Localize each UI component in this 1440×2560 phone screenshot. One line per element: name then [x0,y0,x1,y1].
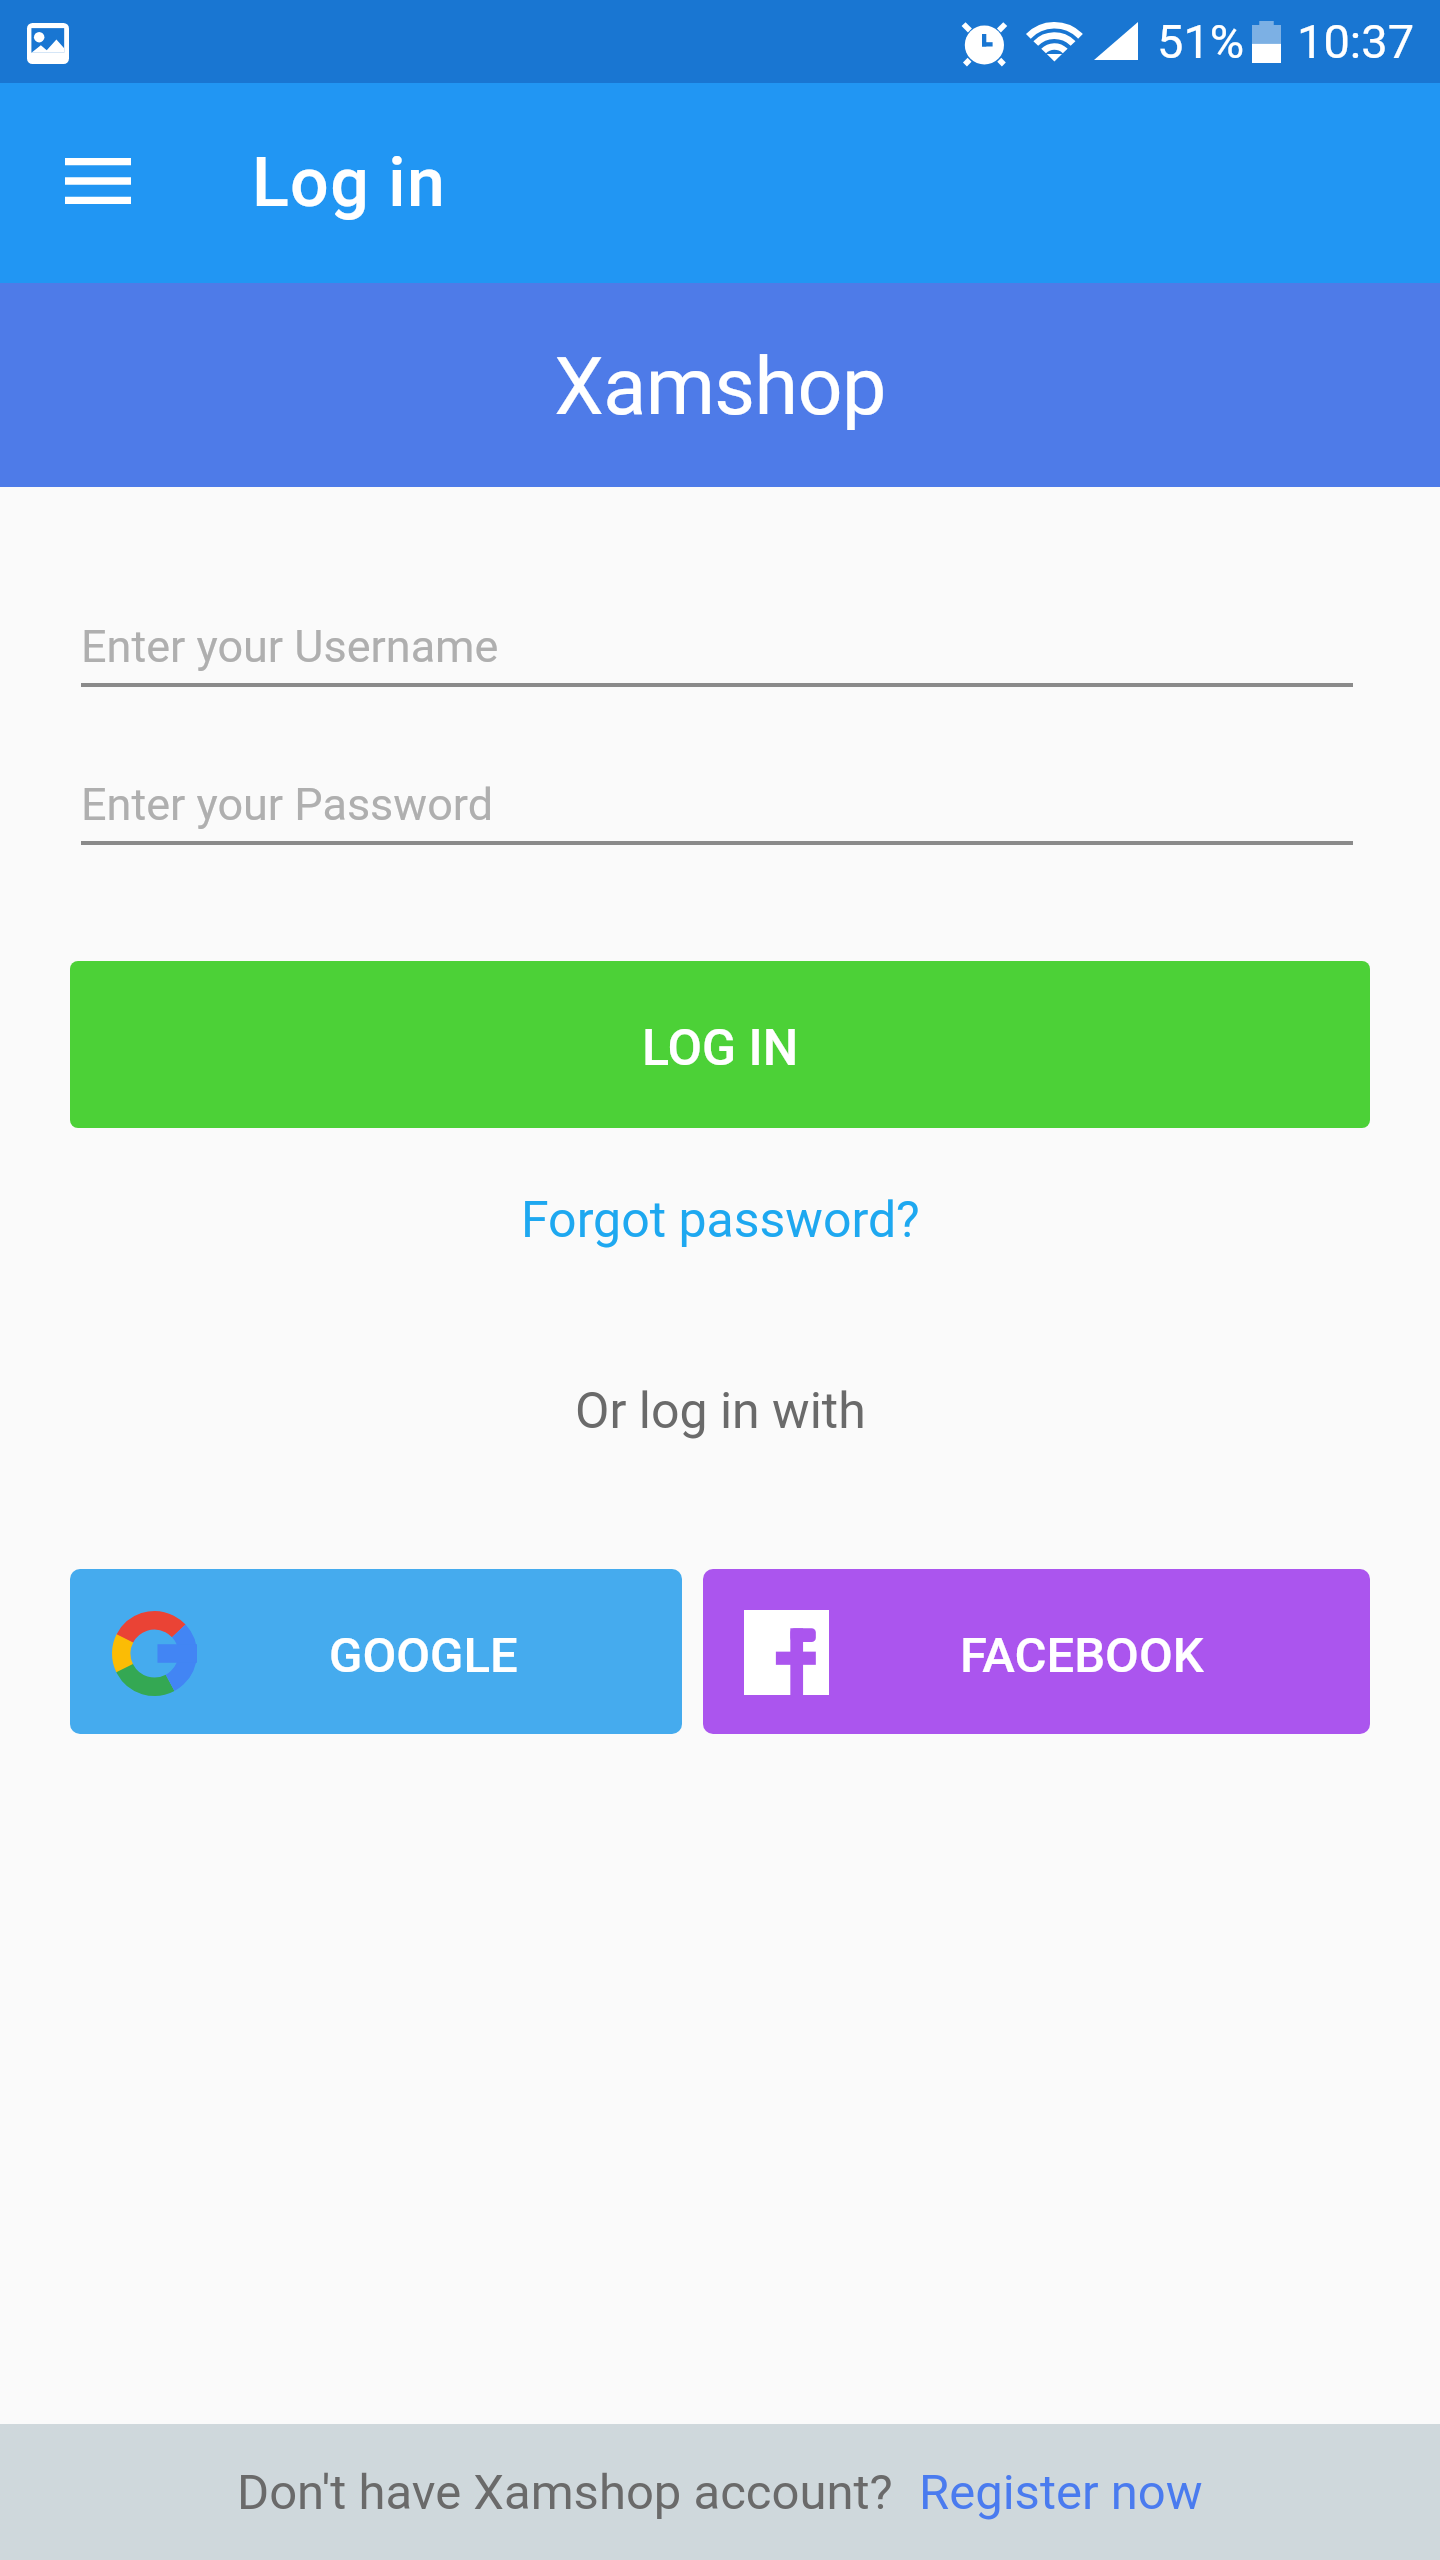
button[interactable]: Open navigation menu [52,135,144,227]
staticText: LOG IN [642,1019,799,1078]
staticText: GOOGLE [329,1627,518,1684]
staticText: Xamshop [0,341,1440,434]
staticText: Don't have Xamshop account? [237,2464,893,2521]
button[interactable]: Register now [907,2448,1215,2537]
button[interactable]: FACEBOOK [703,1569,1370,1734]
staticText: FACEBOOK [960,1627,1204,1684]
staticText: Or log in with [575,1382,866,1441]
button[interactable]: Enter your Username [81,620,1353,687]
staticText: Register now [919,2464,1203,2521]
staticText: 10:37 [1297,14,1415,69]
button[interactable]: LOG IN [70,961,1370,1128]
staticText: Forgot password? [521,1191,920,1250]
button[interactable]: Forgot password? [497,1173,944,1268]
staticText: 51% [1157,14,1245,69]
button[interactable]: GOOGLE [70,1569,682,1734]
button[interactable]: Enter your Password [81,778,1353,845]
other: Screenshot [27,23,69,64]
staticText: Enter your Password [81,778,494,831]
staticText: Log in [252,143,447,223]
staticText: Enter your Username [81,620,499,673]
